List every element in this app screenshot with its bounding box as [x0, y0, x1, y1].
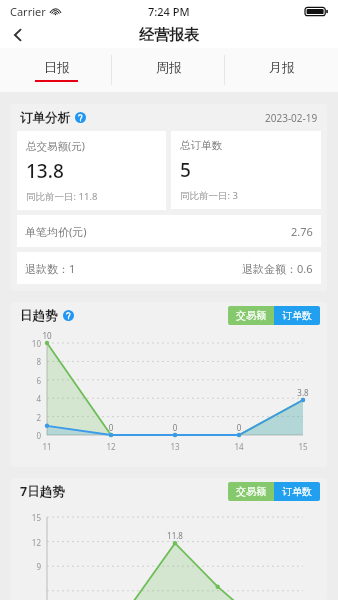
staticText: 3.8	[294, 387, 312, 398]
staticText: 11	[38, 441, 56, 452]
staticText: 经营报表	[139, 26, 199, 45]
staticText: 8	[27, 356, 41, 367]
staticText: 总订单数	[180, 139, 222, 152]
staticText: 订单分析	[20, 110, 70, 126]
button[interactable]: Back	[0, 22, 36, 48]
staticText: 10	[38, 330, 56, 341]
staticText: 0	[166, 422, 184, 433]
staticText: 退款数：1	[25, 261, 76, 276]
staticText: 退款金额：0.6	[242, 261, 313, 276]
staticText: 交易额	[236, 309, 266, 322]
staticText: Carrier	[10, 4, 46, 19]
staticText: 2.76	[291, 224, 313, 239]
staticText: 15	[27, 512, 41, 523]
button[interactable]: 日报	[0, 48, 112, 92]
staticText: 订单数	[282, 309, 312, 322]
staticText: 2	[27, 412, 41, 423]
staticText: 4	[27, 393, 41, 404]
staticText: 0	[230, 422, 248, 433]
staticText: 同比前一日: 11.8	[26, 190, 98, 203]
staticText: 订单数	[282, 485, 312, 498]
staticText: 6	[27, 375, 41, 386]
button[interactable]: 订单数	[274, 306, 320, 325]
staticText: 7:24 PM	[148, 4, 190, 19]
button[interactable]: 交易额	[228, 306, 274, 325]
staticText: 11.8	[164, 530, 186, 541]
staticText: 13	[166, 441, 184, 452]
button[interactable]: 交易额	[228, 482, 274, 501]
staticText: 日趋势	[20, 308, 58, 324]
staticText: 12	[27, 537, 41, 548]
staticText: 10	[27, 338, 41, 349]
staticText: 日报	[44, 59, 70, 75]
staticText: 12	[102, 441, 120, 452]
staticText: 14	[230, 441, 248, 452]
staticText: 2023-02-19	[265, 111, 318, 125]
staticText: 9	[27, 561, 41, 572]
staticText: 5	[180, 157, 191, 183]
button[interactable]: 月报	[225, 48, 338, 92]
staticText: 单笔均价(元)	[25, 224, 87, 239]
staticText: 13.8	[26, 158, 64, 184]
staticText: 同比前一日: 3	[180, 189, 238, 202]
staticText: 15	[294, 441, 312, 452]
staticText: 0	[102, 422, 120, 433]
button[interactable]: 周报	[112, 48, 225, 92]
staticText: 周报	[156, 59, 182, 75]
staticText: 月报	[269, 59, 295, 75]
staticText: 0	[27, 430, 41, 441]
staticText: 7日趋势	[20, 483, 65, 500]
staticText: 总交易额(元)	[26, 139, 85, 153]
button[interactable]: 订单数	[274, 482, 320, 501]
staticText: 交易额	[236, 485, 266, 498]
